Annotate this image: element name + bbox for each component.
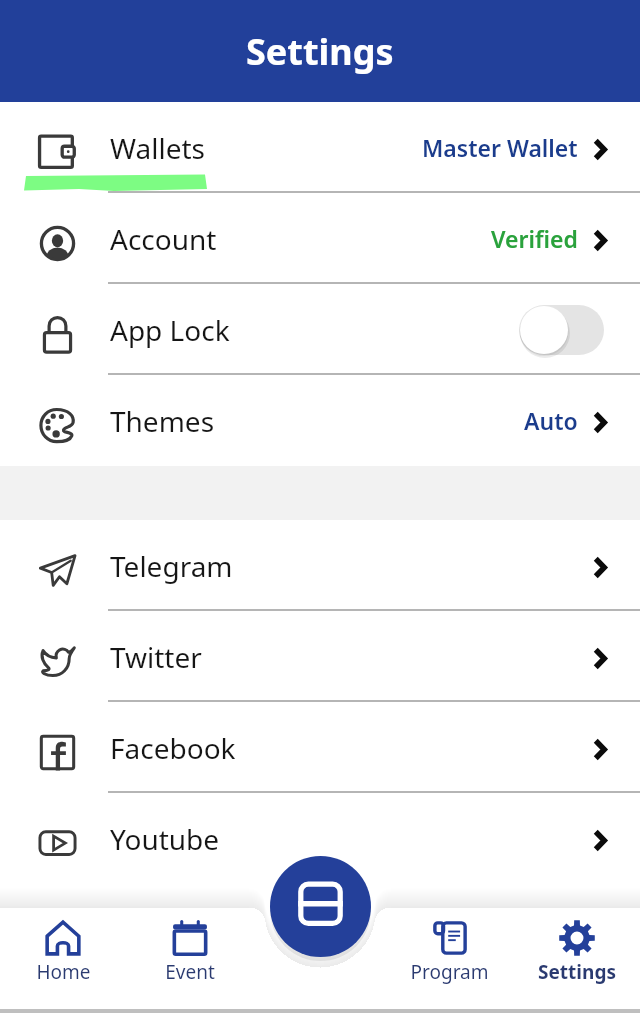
other: Open	[593, 829, 607, 852]
button[interactable]: Wallets	[0, 102, 640, 193]
other: Open	[593, 138, 607, 161]
staticText: Verified	[491, 223, 578, 254]
button[interactable]: Home	[0, 905, 126, 1013]
button[interactable]: Telegram	[0, 520, 640, 611]
button[interactable]: Program	[386, 905, 513, 1013]
button[interactable]: App Lock	[0, 284, 640, 375]
staticText: Program	[410, 959, 489, 985]
staticText: Wallets	[110, 129, 205, 167]
staticText: Themes	[110, 402, 215, 440]
button[interactable]: Settings	[513, 905, 640, 1013]
staticText: Settings	[246, 27, 394, 76]
other: Open	[593, 229, 607, 252]
staticText: Twitter	[110, 638, 202, 676]
button[interactable]: Event	[126, 905, 253, 1013]
staticText: Event	[165, 959, 215, 985]
other: Open	[593, 738, 607, 761]
button[interactable]: Themes	[0, 375, 640, 466]
staticText: App Lock	[110, 311, 230, 349]
staticText: Settings	[538, 959, 616, 985]
button[interactable]: Twitter	[0, 611, 640, 702]
staticText: Telegram	[110, 547, 233, 585]
staticText: Facebook	[110, 729, 236, 767]
staticText: Auto	[524, 405, 578, 436]
other: Open	[593, 647, 607, 670]
button[interactable]: Facebook	[0, 702, 640, 793]
other: Open	[593, 411, 607, 434]
other: Open	[593, 556, 607, 579]
staticText: Account	[110, 220, 217, 258]
staticText: Master Wallet	[422, 132, 578, 163]
staticText: Youtube	[110, 820, 220, 858]
button[interactable]: Youtube	[0, 793, 640, 884]
button[interactable]: Scan card	[270, 856, 371, 957]
button[interactable]: Account	[0, 193, 640, 284]
staticText: Home	[36, 959, 91, 985]
